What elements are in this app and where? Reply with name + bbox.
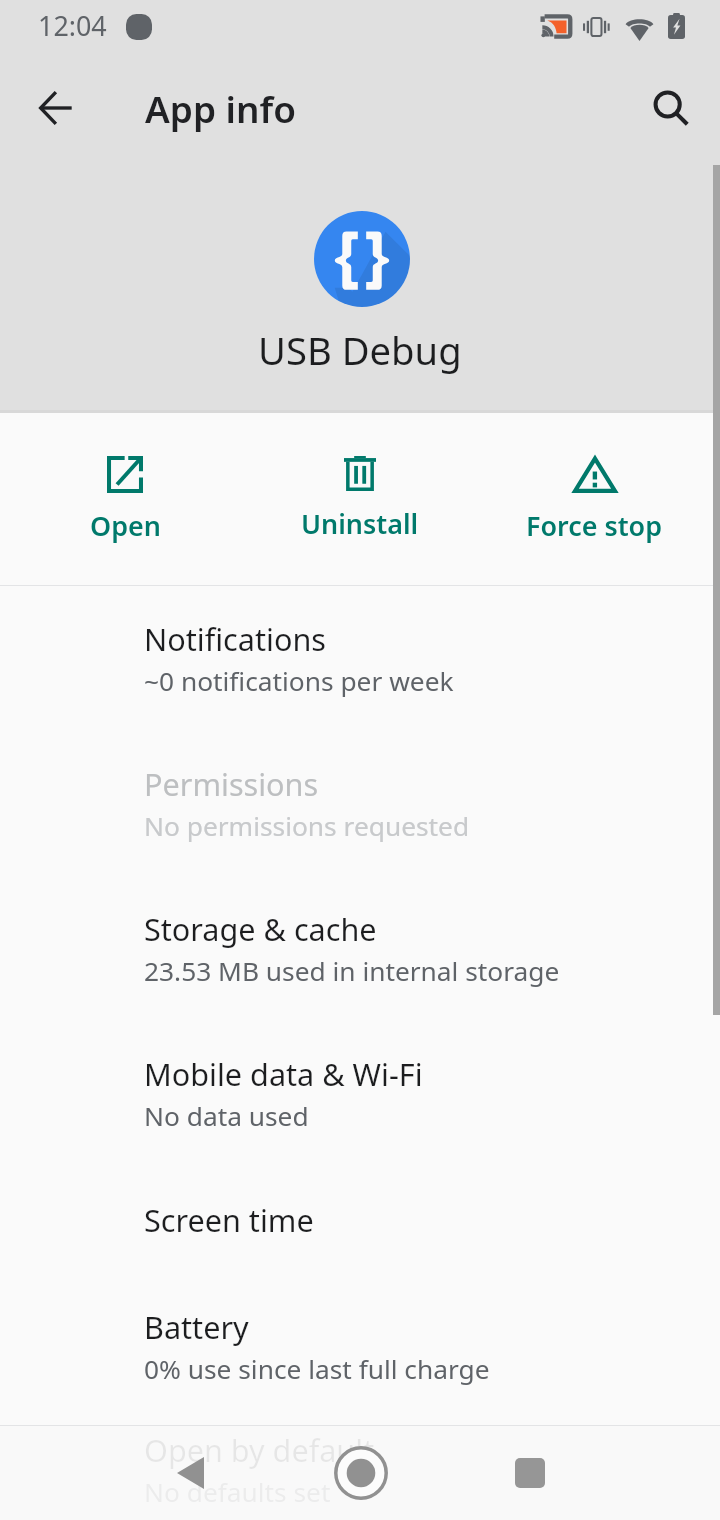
staticText: No permissions requested [144, 808, 470, 844]
staticText: Storage & cache [144, 908, 377, 950]
staticText: Open [90, 507, 161, 544]
staticText: ~0 notifications per week [144, 663, 454, 699]
staticText: 0% use since last full charge [144, 1351, 490, 1387]
button[interactable]: Open by default [0, 1419, 720, 1520]
button[interactable]: Screen time [0, 1166, 720, 1274]
staticText: Uninstall [301, 505, 419, 542]
staticText: Notifications [144, 618, 326, 660]
staticText: Mobile data & Wi-Fi [144, 1053, 423, 1095]
button[interactable]: Search [623, 60, 719, 156]
staticText: Permissions [144, 763, 319, 805]
button[interactable]: Mobile data & Wi-Fi [0, 1021, 720, 1166]
button[interactable]: Permissions [0, 731, 720, 876]
staticText: Battery [144, 1306, 249, 1348]
staticText: Open by default [144, 1429, 375, 1471]
staticText: Force stop [526, 507, 663, 544]
staticText: 23.53 MB used in internal storage [144, 953, 560, 989]
button[interactable]: Uninstall [242, 412, 477, 585]
button[interactable]: Storage & cache [0, 876, 720, 1021]
staticText: No data used [144, 1098, 309, 1134]
button[interactable]: Back [8, 60, 104, 156]
button[interactable]: Recent apps [482, 1425, 578, 1520]
button[interactable]: Home [313, 1425, 409, 1520]
staticText: USB Debug [258, 324, 462, 376]
staticText: App info [145, 84, 296, 134]
button[interactable]: Back [142, 1425, 238, 1520]
button[interactable]: Battery [0, 1274, 720, 1419]
button[interactable]: Open [8, 412, 242, 585]
staticText: Screen time [144, 1199, 314, 1241]
button[interactable]: Notifications [0, 586, 720, 731]
button[interactable]: Force stop [477, 412, 712, 585]
staticText: 12:04 [38, 7, 107, 44]
staticText: No defaults set [144, 1474, 331, 1510]
